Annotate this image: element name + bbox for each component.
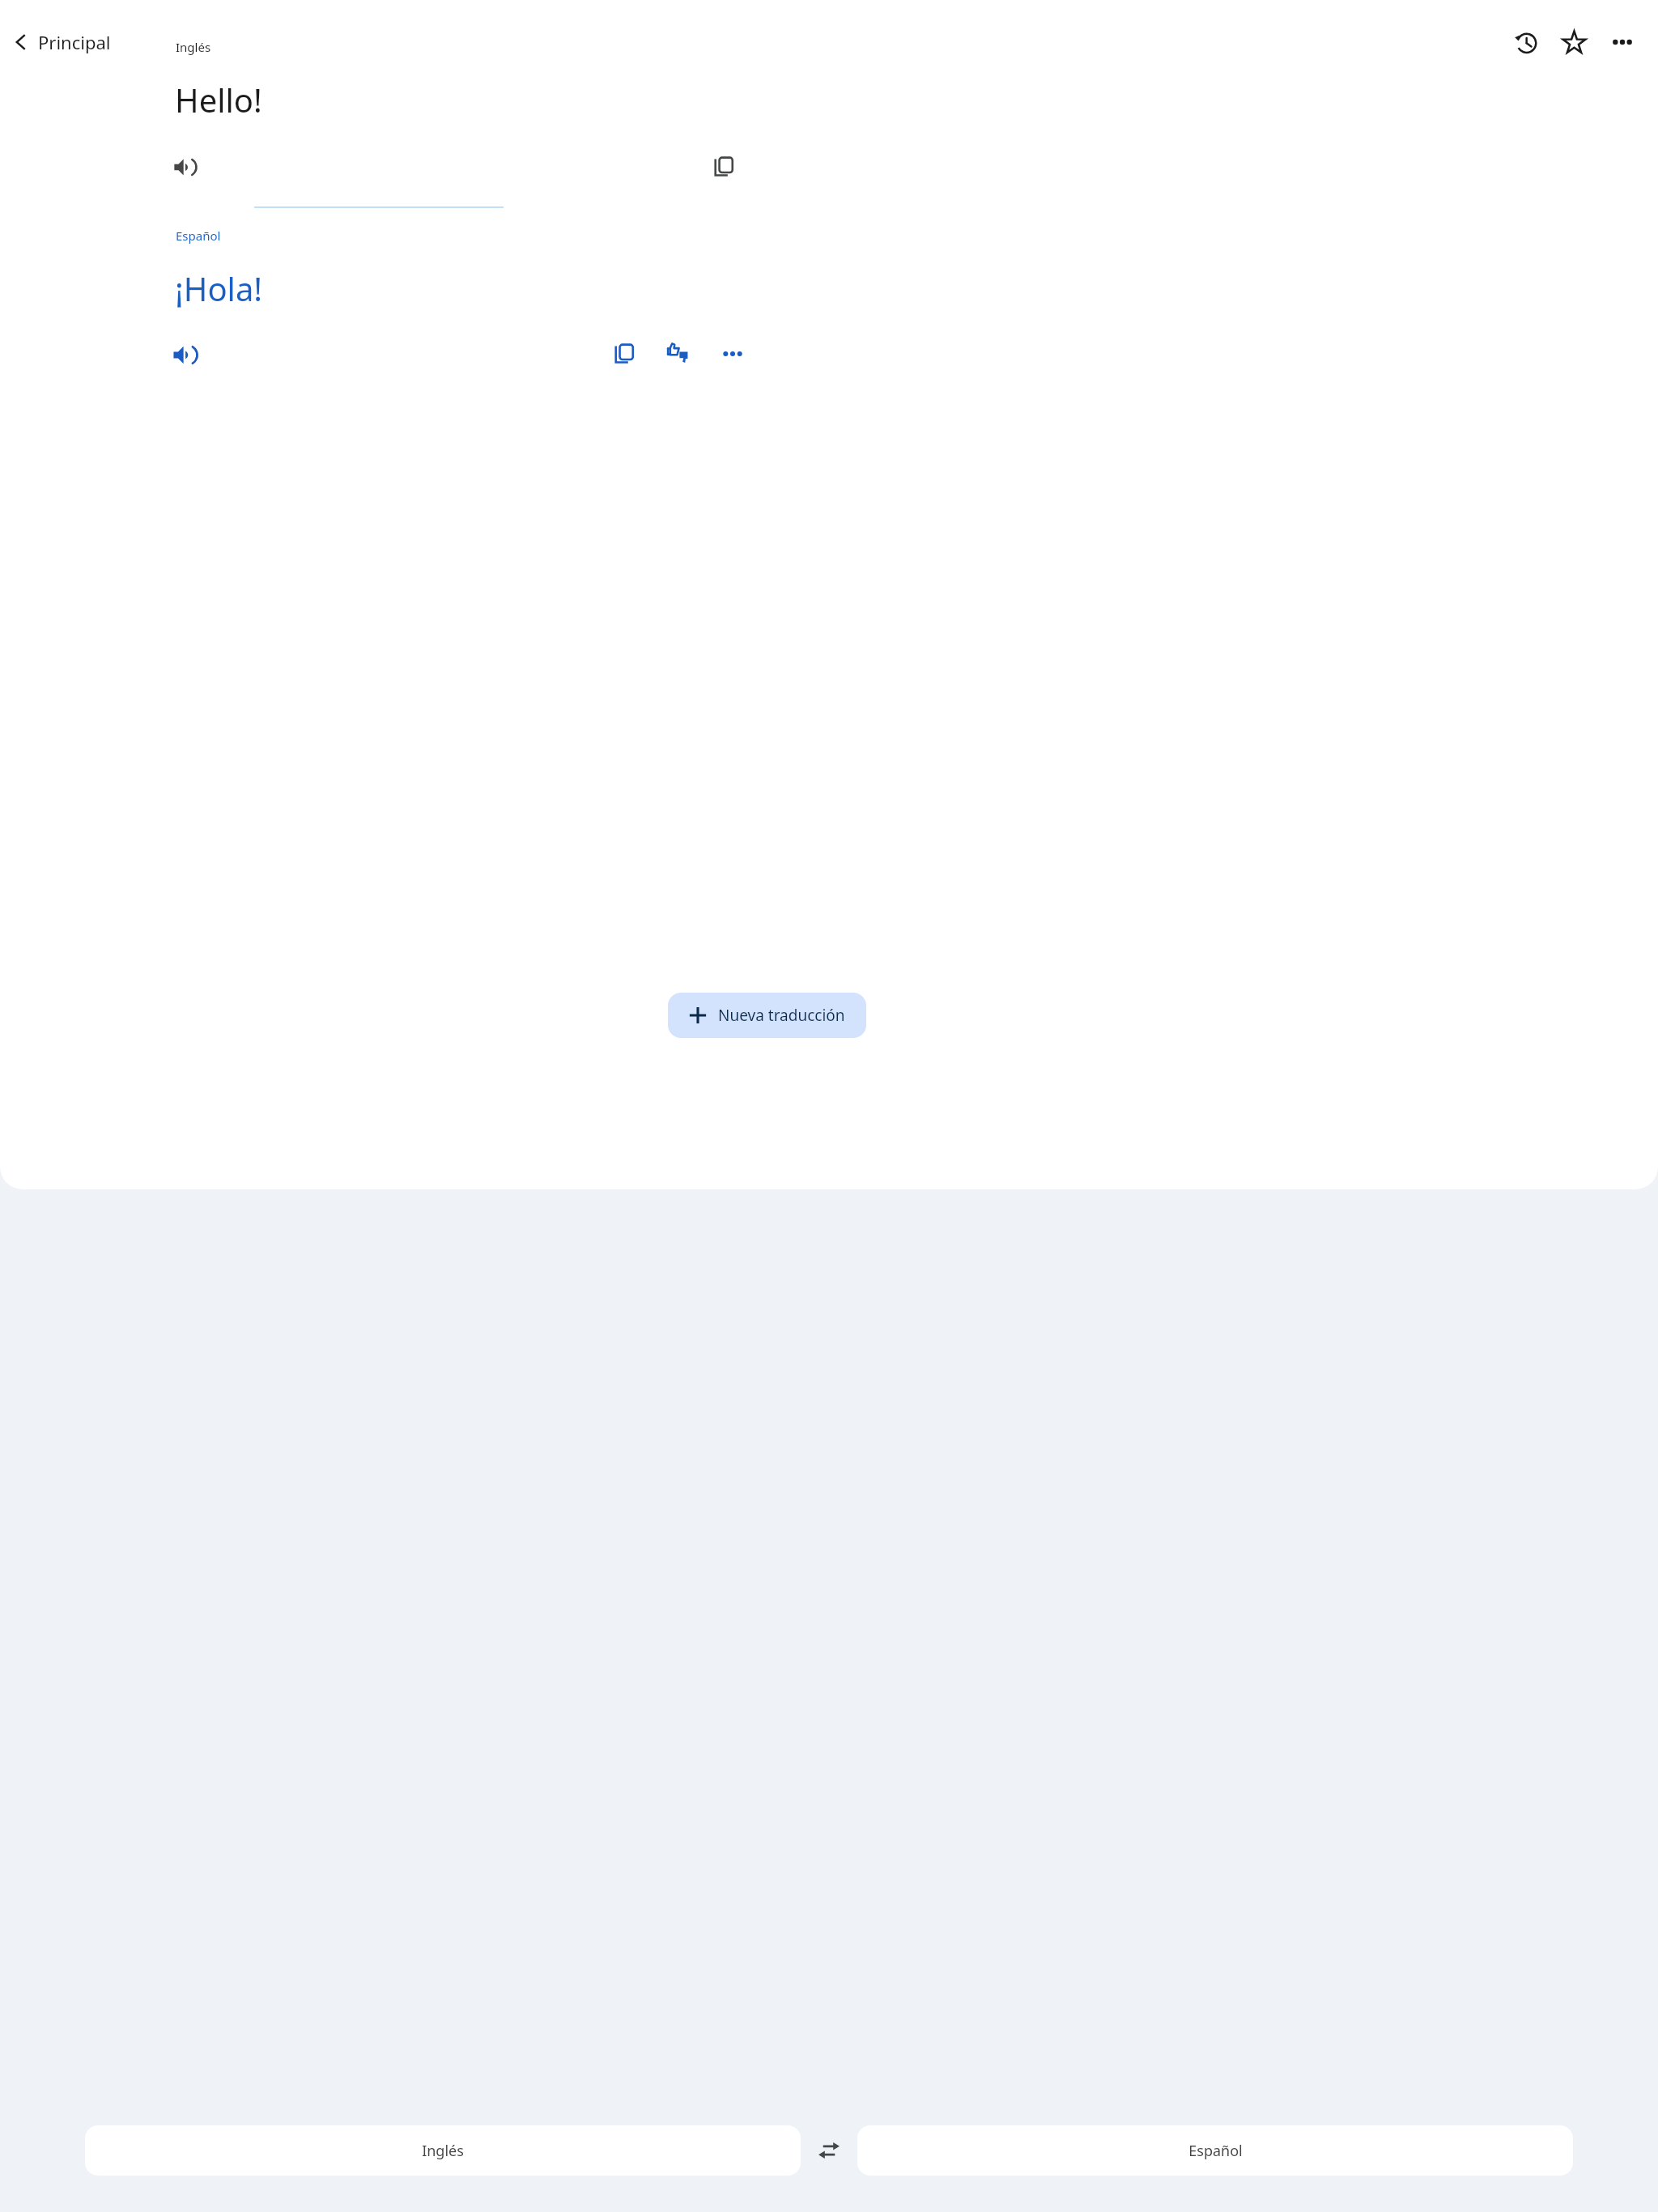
- button[interactable]: Rate this translation: [657, 333, 699, 375]
- button[interactable]: Español: [857, 2125, 1573, 2176]
- button[interactable]: Inglés: [176, 39, 211, 55]
- staticText: ¡Hola!: [175, 266, 263, 310]
- button[interactable]: More translation options: [712, 333, 754, 375]
- staticText: Español: [1188, 2141, 1243, 2161]
- button[interactable]: Copy source text: [703, 146, 745, 188]
- button[interactable]: Nueva traducción: [668, 993, 866, 1038]
- button[interactable]: History: [1506, 23, 1545, 62]
- button[interactable]: Listen to translation: [162, 333, 206, 376]
- button[interactable]: Copy translation: [603, 333, 645, 375]
- button[interactable]: Listen to source: [163, 146, 205, 188]
- staticText: Inglés: [422, 2141, 464, 2161]
- button[interactable]: Español: [176, 228, 221, 244]
- button[interactable]: Favorite: [1554, 23, 1593, 62]
- staticText: Principal: [38, 30, 111, 54]
- button[interactable]: Principal: [6, 23, 122, 61]
- button[interactable]: More options: [1603, 23, 1642, 62]
- staticText: Español: [176, 228, 221, 244]
- staticText: Nueva traducción: [718, 1005, 845, 1026]
- button[interactable]: Inglés: [85, 2125, 801, 2176]
- button[interactable]: Swap languages: [801, 2125, 857, 2176]
- staticText: Hello!: [175, 78, 262, 121]
- staticText: Inglés: [176, 39, 211, 55]
